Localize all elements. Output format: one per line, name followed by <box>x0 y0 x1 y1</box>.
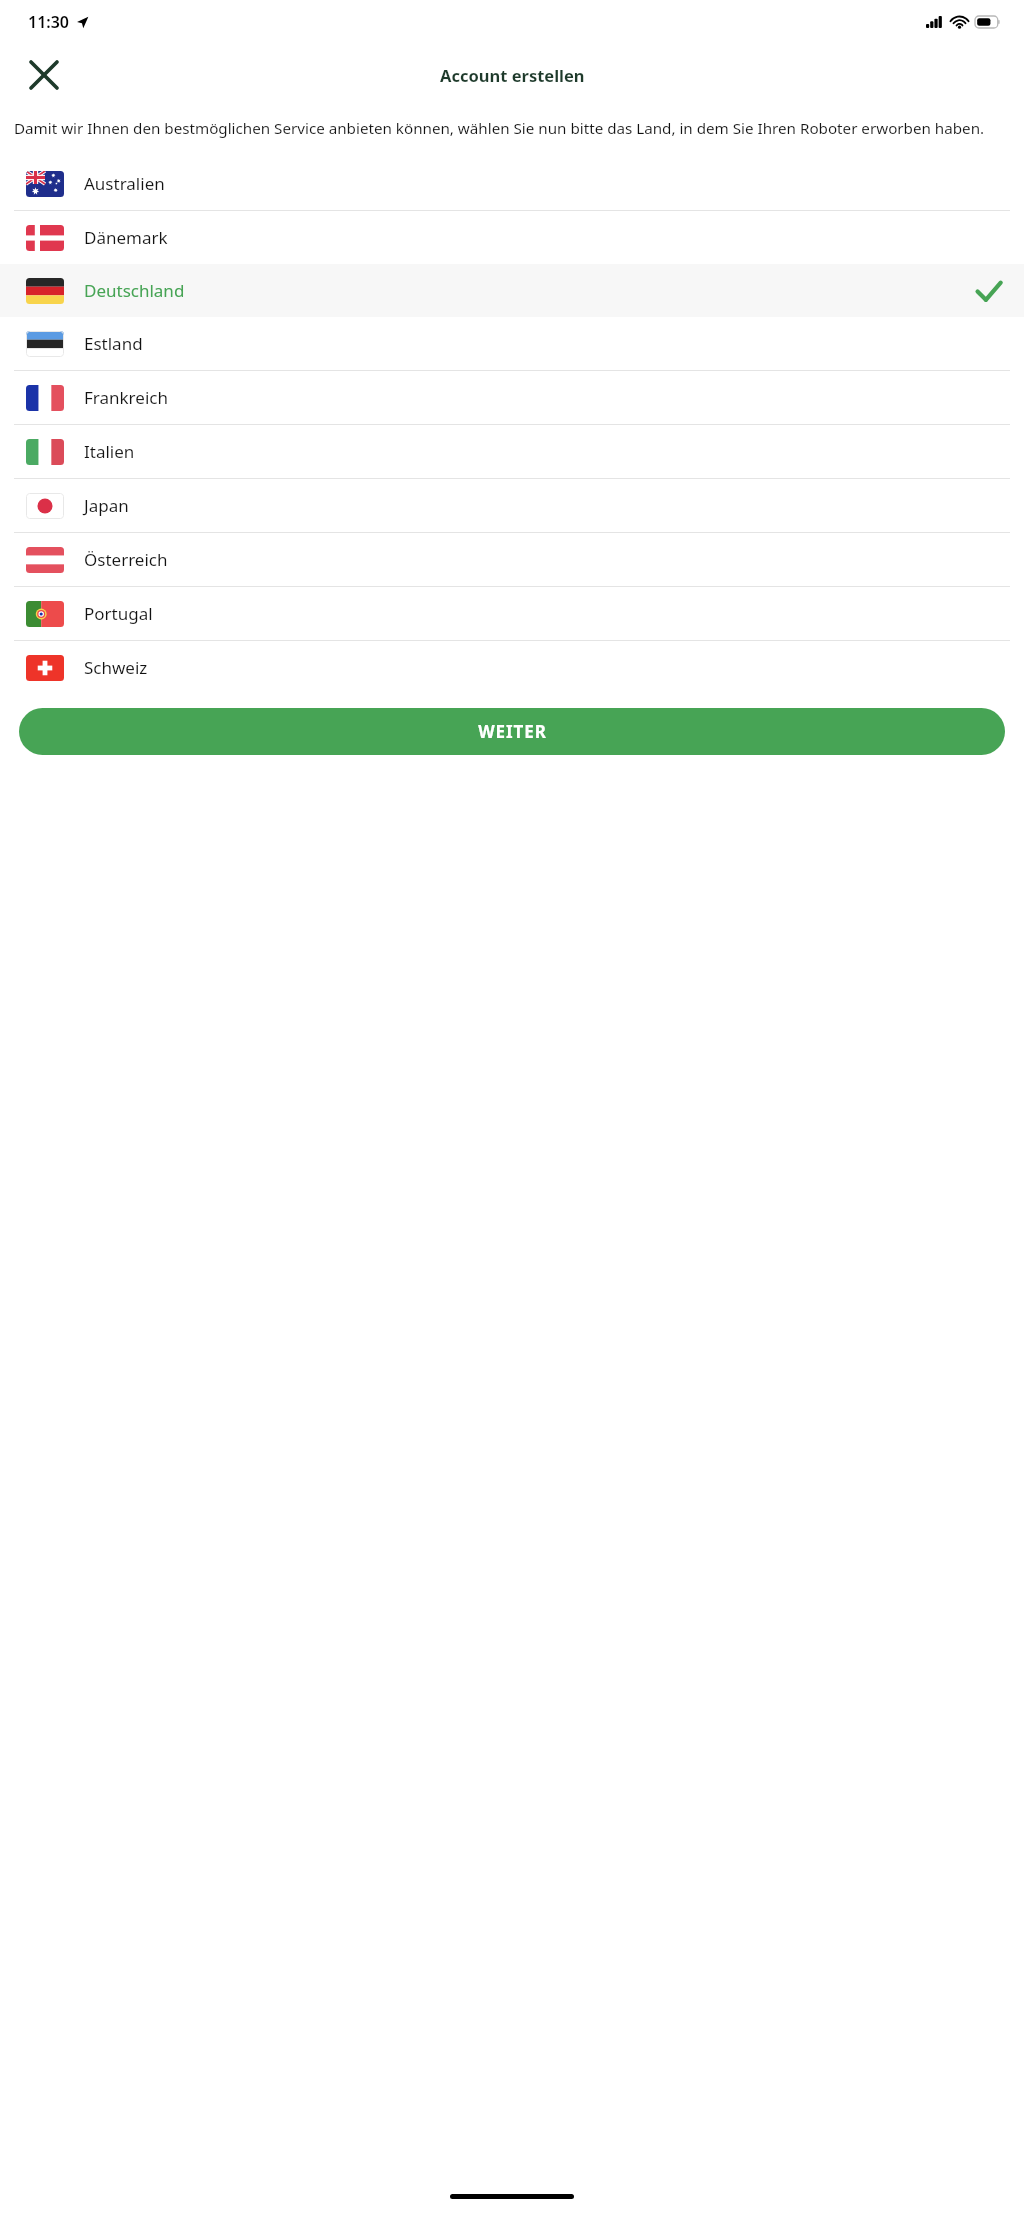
staticText: Account erstellen <box>440 64 585 86</box>
button[interactable]: Portugal <box>0 587 1024 640</box>
button[interactable]: Dänemark <box>0 211 1024 264</box>
staticText: Österreich <box>84 548 168 571</box>
staticText: Portugal <box>84 602 153 625</box>
button[interactable]: Japan <box>0 479 1024 532</box>
button[interactable]: Deutschland <box>0 264 1024 317</box>
button[interactable]: Estland <box>0 317 1024 370</box>
staticText: Schweiz <box>84 656 148 679</box>
staticText: Dänemark <box>84 226 168 249</box>
staticText: Estland <box>84 332 143 355</box>
button[interactable]: Australien <box>0 157 1024 210</box>
staticText: Italien <box>84 440 135 463</box>
staticText: WEITER <box>478 720 547 743</box>
button[interactable]: Schweiz <box>0 641 1024 694</box>
button[interactable]: Österreich <box>0 533 1024 586</box>
button[interactable]: Schließen <box>22 53 66 97</box>
staticText: Frankreich <box>84 386 168 409</box>
staticText: Japan <box>84 494 129 517</box>
staticText: 11:30 <box>28 11 70 33</box>
staticText: Deutschland <box>84 279 185 302</box>
button[interactable]: Frankreich <box>0 371 1024 424</box>
staticText: Damit wir Ihnen den bestmöglichen Servic… <box>14 118 985 139</box>
staticText: Australien <box>84 172 165 195</box>
button[interactable]: WEITER <box>19 708 1005 755</box>
button[interactable]: Italien <box>0 425 1024 478</box>
